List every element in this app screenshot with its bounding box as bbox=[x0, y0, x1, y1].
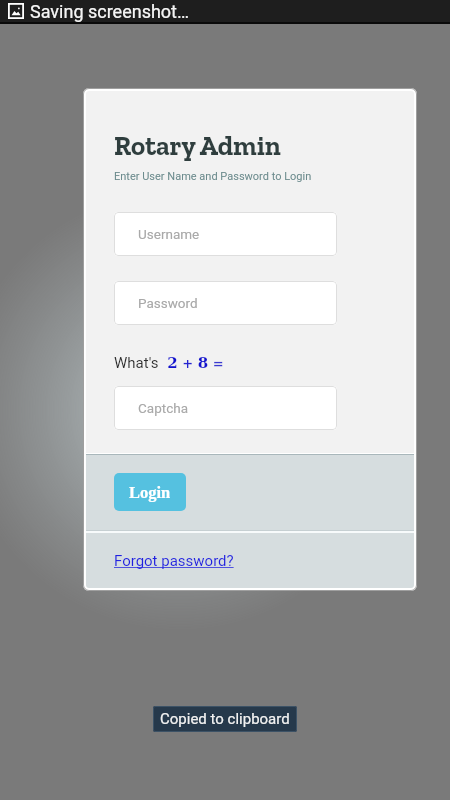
button[interactable]: Captcha bbox=[114, 386, 337, 430]
staticText: Saving screenshot… bbox=[30, 1, 190, 22]
button[interactable]: Forgot password? bbox=[114, 552, 234, 570]
staticText: Captcha bbox=[138, 400, 188, 416]
button[interactable]: Password bbox=[114, 281, 337, 325]
other: Screenshot saved bbox=[8, 3, 24, 19]
button[interactable]: Username bbox=[114, 212, 337, 256]
staticText: Password bbox=[138, 295, 198, 311]
staticText: Forgot password? bbox=[114, 552, 234, 570]
staticText: Login bbox=[129, 483, 171, 501]
button[interactable]: Login bbox=[114, 473, 186, 511]
staticText: What's 2 + 8 = bbox=[114, 354, 224, 372]
staticText: Username bbox=[138, 226, 200, 242]
staticText: Rotary Admin bbox=[114, 130, 281, 162]
staticText: Enter User Name and Password to Login bbox=[114, 170, 312, 183]
staticText: Copied to clipboard bbox=[160, 710, 290, 728]
